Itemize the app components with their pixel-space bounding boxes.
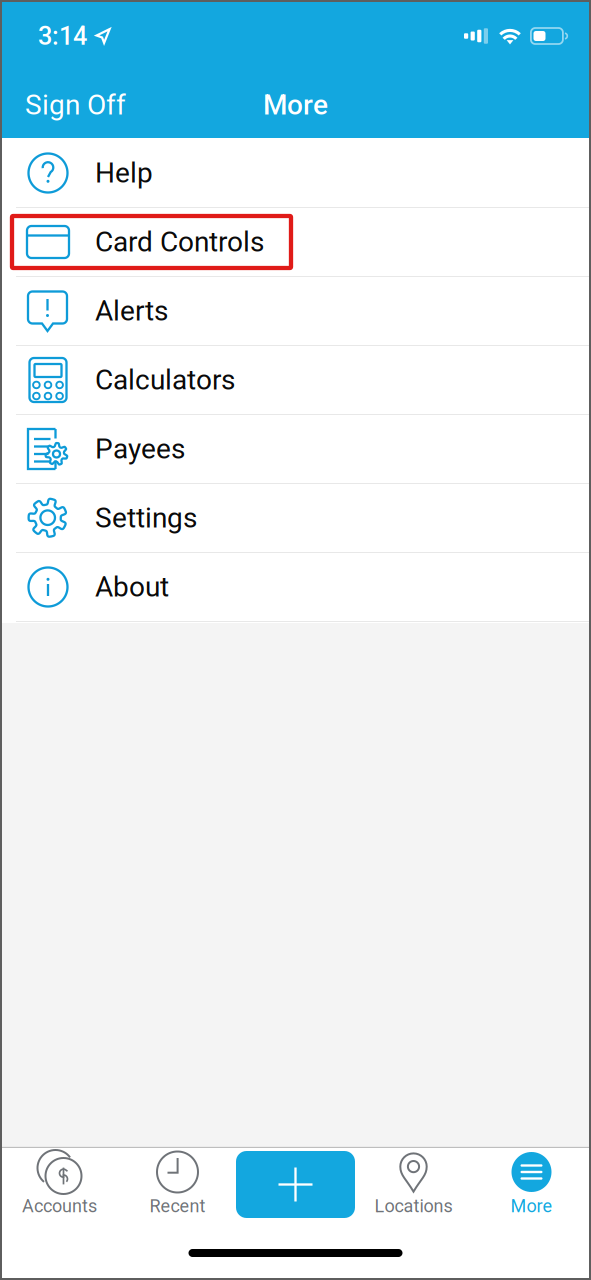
staticText: Sign Off — [25, 89, 126, 121]
button[interactable]: More — [472, 1148, 590, 1226]
button[interactable]: Card Controls — [0, 208, 591, 277]
staticText: More — [263, 89, 328, 121]
staticText: Alerts — [95, 295, 168, 327]
button[interactable]: Locations — [354, 1148, 472, 1226]
button[interactable]: Help — [0, 139, 591, 208]
button[interactable]: Calculators — [0, 346, 591, 415]
staticText: Accounts — [22, 1195, 97, 1217]
staticText: Help — [95, 157, 153, 189]
staticText: Payees — [95, 433, 185, 465]
button[interactable]: Accounts — [0, 1148, 118, 1226]
staticText: More — [510, 1195, 552, 1217]
button[interactable]: Settings — [0, 484, 591, 553]
button[interactable]: Alerts — [0, 277, 591, 346]
staticText: Recent — [149, 1195, 205, 1217]
button[interactable]: About — [0, 553, 591, 622]
staticText: 3:14 — [38, 21, 87, 51]
staticText: Card Controls — [95, 226, 264, 258]
staticText: Settings — [95, 502, 197, 534]
staticText: Calculators — [95, 364, 235, 396]
staticText: About — [95, 571, 169, 603]
button[interactable]: Sign Off — [0, 78, 144, 132]
button[interactable]: Add — [236, 1148, 354, 1226]
button[interactable]: Recent — [118, 1148, 236, 1226]
button[interactable]: Payees — [0, 415, 591, 484]
staticText: Locations — [374, 1195, 452, 1217]
